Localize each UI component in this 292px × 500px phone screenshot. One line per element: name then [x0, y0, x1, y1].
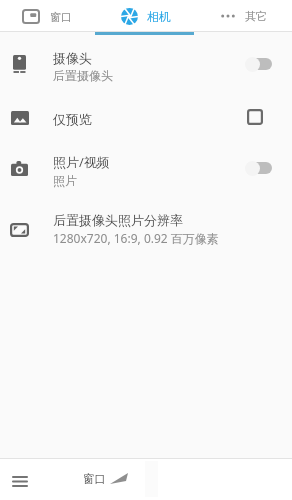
- staticText: 仅预览: [53, 111, 92, 127]
- staticText: 后置摄像头: [53, 68, 113, 83]
- button[interactable]: 后置摄像头照片分辨率: [0, 202, 292, 256]
- staticText: 后置摄像头照片分辨率: [53, 212, 183, 228]
- button[interactable]: 窗口: [0, 0, 93, 32]
- button[interactable]: Menu: [5, 467, 34, 496]
- button[interactable]: Toggle: [244, 54, 272, 74]
- button[interactable]: 其它: [195, 0, 292, 32]
- staticText: 1280x720, 16:9, 0.92 百万像素: [53, 230, 219, 246]
- staticText: 窗口: [83, 472, 106, 486]
- button[interactable]: 仅预览: [0, 97, 292, 141]
- staticText: 摄像头: [53, 50, 92, 66]
- staticText: 窗口: [50, 10, 72, 24]
- button[interactable]: 照片/视频: [0, 143, 292, 197]
- staticText: 照片/视频: [53, 153, 110, 171]
- staticText: 其它: [245, 9, 267, 23]
- button[interactable]: 摄像头: [0, 39, 292, 93]
- button[interactable]: Checkbox: [247, 109, 263, 125]
- staticText: 相机: [147, 9, 171, 24]
- button[interactable]: 窗口: [72, 458, 117, 500]
- button[interactable]: 相机: [97, 0, 195, 32]
- staticText: 照片: [53, 173, 77, 188]
- button[interactable]: Toggle: [244, 158, 272, 178]
